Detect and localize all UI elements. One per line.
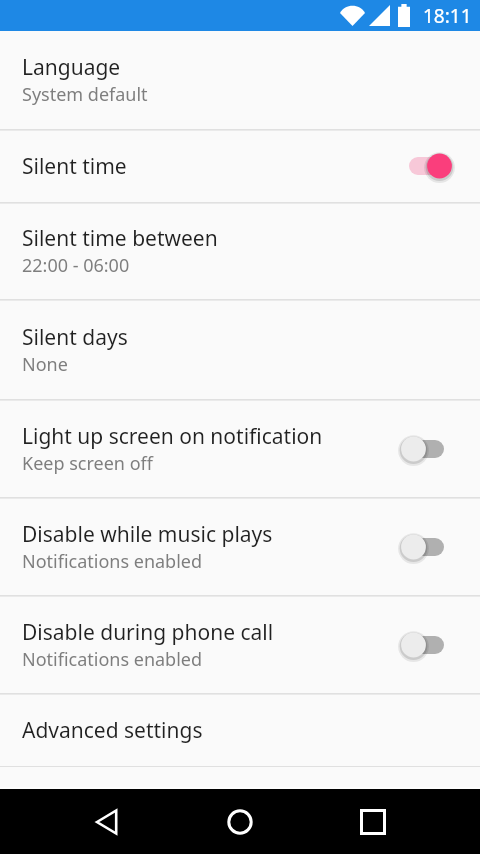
staticText: 18:11: [423, 3, 472, 29]
staticText: Silent time: [22, 152, 127, 181]
staticText: Disable during phone call: [22, 618, 274, 647]
button[interactable]: Recents: [341, 790, 405, 854]
staticText: Silent time between: [22, 224, 218, 253]
button[interactable]: Light up screen on notification: [0, 400, 480, 497]
button[interactable]: Disable during phone call: [0, 596, 480, 693]
button[interactable]: Silent time: [0, 130, 480, 202]
staticText: Advanced settings: [22, 716, 203, 745]
staticText: Silent days: [22, 323, 128, 352]
button[interactable]: Back: [75, 790, 139, 854]
button[interactable]: Silent days: [0, 300, 480, 399]
button[interactable]: Toggle on: [396, 138, 464, 194]
staticText: Notifications enabled: [22, 549, 203, 574]
button[interactable]: Advanced settings: [0, 694, 480, 766]
button[interactable]: Silent time between: [0, 203, 480, 299]
staticText: System default: [22, 82, 148, 107]
button[interactable]: Disable while music plays: [0, 498, 480, 595]
staticText: Notifications enabled: [22, 647, 203, 672]
staticText: Keep screen off: [22, 451, 153, 476]
button[interactable]: Toggle off: [396, 519, 464, 575]
button[interactable]: Toggle off: [396, 421, 464, 477]
staticText: None: [22, 352, 68, 377]
button[interactable]: Home: [208, 790, 272, 854]
staticText: 22:00 - 06:00: [22, 253, 130, 278]
staticText: Disable while music plays: [22, 520, 273, 549]
staticText: Language: [22, 53, 121, 82]
staticText: Light up screen on notification: [22, 422, 323, 451]
button[interactable]: Toggle off: [396, 617, 464, 673]
button[interactable]: Language: [0, 31, 480, 129]
